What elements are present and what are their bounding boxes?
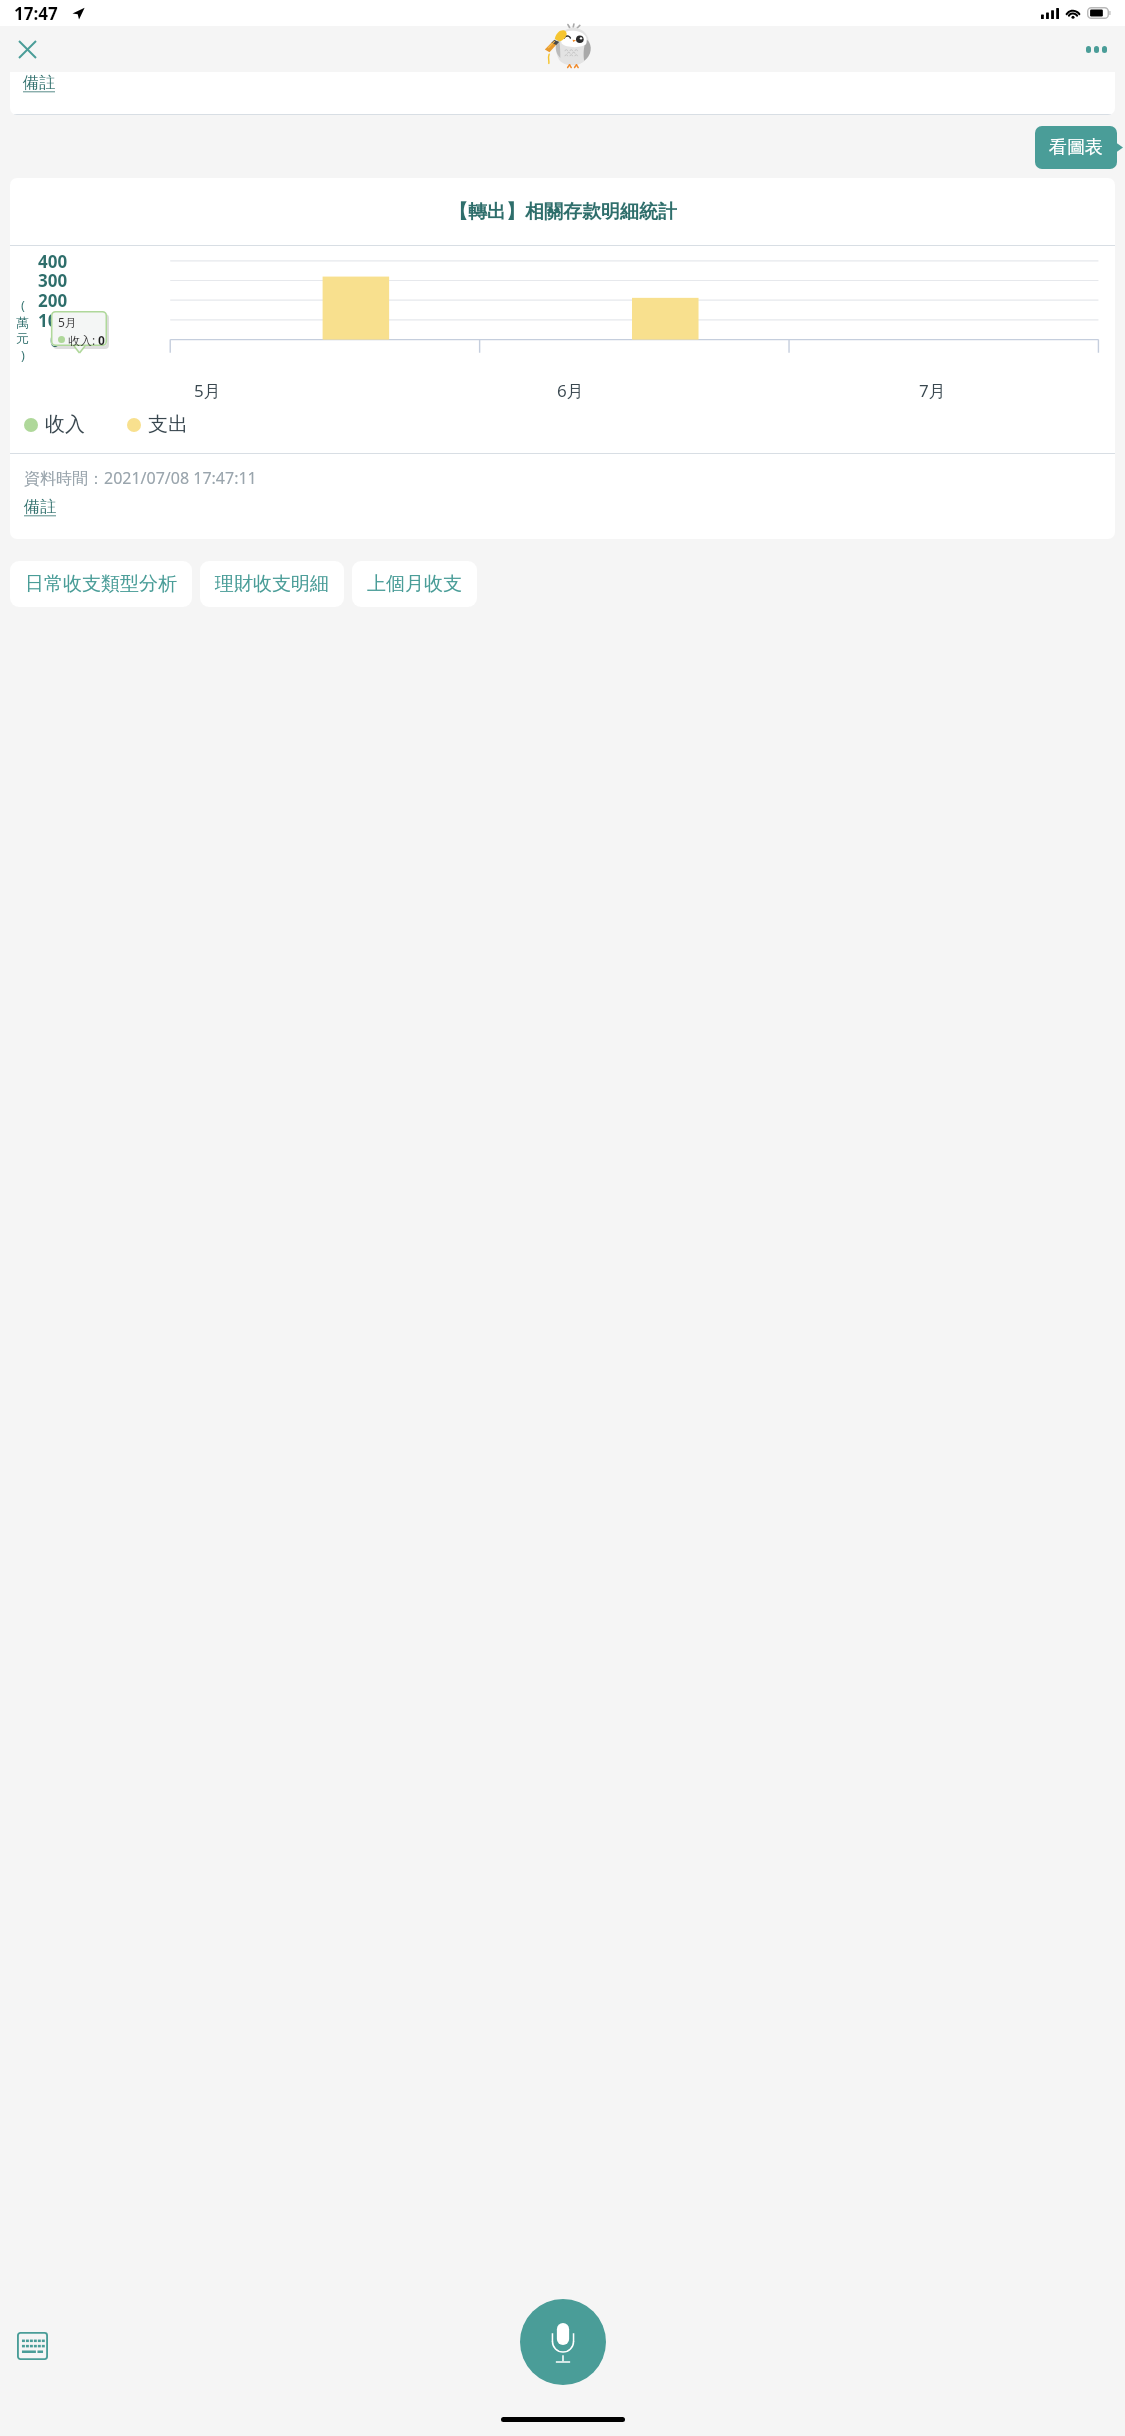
staticText: 萬: [16, 314, 29, 330]
staticText: 17:47: [14, 2, 58, 25]
staticText: 【轉出】相關存款明細統計: [449, 200, 677, 224]
staticText: 6月: [557, 379, 584, 402]
staticText: 支出: [148, 412, 188, 437]
button[interactable]: 收入: [24, 412, 85, 437]
staticText: (: [21, 296, 25, 314]
staticText: 400: [38, 250, 68, 273]
button[interactable]: 【轉出】相關存款明細統計: [10, 178, 1115, 539]
button[interactable]: More options: [1075, 28, 1117, 70]
staticText: 元: [16, 330, 29, 346]
staticText: 日常收支類型分析: [25, 572, 177, 596]
staticText: 收入:: [68, 332, 96, 346]
button[interactable]: 支出: [127, 412, 188, 437]
button[interactable]: 備註: [24, 497, 56, 517]
staticText: 備註: [23, 73, 55, 93]
staticText: 300: [38, 269, 68, 292]
staticText: 0.00: [98, 332, 107, 346]
button[interactable]: 備註: [10, 72, 1115, 115]
staticText: 200: [38, 289, 68, 312]
button[interactable]: 看圖表: [1035, 126, 1117, 169]
staticText: 5月: [58, 314, 77, 330]
staticText: 上個月收支: [367, 572, 462, 596]
staticText: 5月: [194, 379, 221, 402]
button[interactable]: 上個月收支: [352, 561, 477, 607]
button[interactable]: Close: [6, 28, 48, 70]
staticText: 100: [38, 309, 68, 332]
staticText: 收入: [45, 412, 85, 437]
staticText: ): [21, 346, 25, 364]
button[interactable]: Keyboard: [10, 2324, 54, 2368]
button[interactable]: 日常收支類型分析: [10, 561, 192, 607]
button[interactable]: 理財收支明細: [200, 561, 344, 607]
button[interactable]: Voice input: [520, 2299, 606, 2385]
staticText: 7月: [919, 379, 946, 402]
staticText: 0: [50, 329, 60, 352]
staticText: 看圖表: [1049, 136, 1103, 159]
staticText: 資料時間：2021/07/08 17:47:11: [24, 467, 257, 489]
staticText: 理財收支明細: [215, 572, 329, 596]
